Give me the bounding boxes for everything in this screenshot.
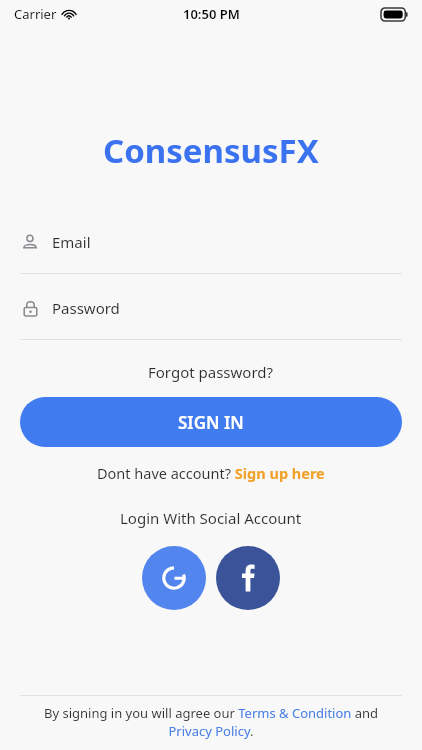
staticText: Email	[52, 232, 91, 252]
button[interactable]: SIGN IN	[20, 397, 402, 447]
button[interactable]: By signing in you will agree our Terms &…	[28, 704, 394, 740]
staticText: 10:50 PM	[183, 5, 240, 23]
staticText: Login With Social Account	[120, 508, 302, 528]
button[interactable]: Email	[20, 229, 402, 255]
button[interactable]: Sign in with Google	[142, 546, 206, 610]
staticText: SIGN IN	[178, 411, 244, 434]
staticText: Dont have account? Sign up here	[97, 463, 325, 483]
button[interactable]: Dont have account? Sign up here	[0, 463, 422, 483]
staticText: By signing in you will agree our Terms &…	[28, 704, 394, 740]
staticText: Forgot password?	[148, 362, 274, 382]
staticText: Password	[52, 298, 120, 318]
staticText: ConsensusFX	[103, 128, 319, 173]
button[interactable]: Sign in with Facebook	[216, 546, 280, 610]
button[interactable]: Password	[20, 295, 402, 321]
staticText: Carrier	[14, 5, 57, 23]
button[interactable]: Forgot password?	[0, 362, 422, 382]
